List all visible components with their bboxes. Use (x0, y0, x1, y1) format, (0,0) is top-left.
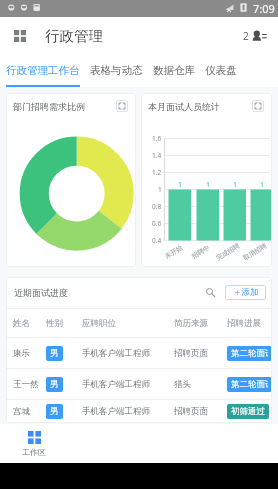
staticText: 男 (50, 348, 59, 359)
button[interactable]: 仪表盘 (200, 54, 242, 87)
staticText: 初筛通过 (231, 406, 265, 417)
staticText: 2 (243, 29, 249, 43)
staticText: 数据仓库 (153, 64, 195, 77)
staticText: 1 (206, 180, 211, 190)
staticText: 第二轮面试 (231, 379, 268, 390)
button[interactable]: Members (240, 26, 270, 46)
staticText: 男 (50, 406, 59, 417)
button[interactable]: 表格与动态 (85, 54, 148, 87)
staticText: 0.4 (152, 236, 162, 245)
button[interactable]: 王一然 (6, 369, 272, 399)
staticText: 招聘中 (190, 243, 212, 261)
staticText: 近期面试进度 (14, 287, 68, 298)
button[interactable]: Search (201, 285, 220, 300)
button[interactable]: Fullscreen (116, 100, 128, 112)
staticText: 本月面试人员统计 (148, 101, 220, 112)
button[interactable]: Menu (9, 24, 31, 48)
staticText: 猎头 (174, 379, 191, 390)
staticText: 行政管理工作台 (6, 64, 80, 77)
staticText: 1.6 (152, 134, 162, 143)
staticText: 未开始 (163, 243, 185, 261)
staticText: 0.8 (152, 202, 162, 211)
button[interactable]: 宫城 (6, 400, 272, 423)
staticText: 部门招聘需求比例 (13, 101, 85, 112)
staticText: 宫城 (13, 406, 30, 417)
button[interactable]: ＋添加 (225, 285, 266, 300)
button[interactable]: 数据仓库 (148, 54, 200, 87)
staticText: 1 (233, 180, 238, 190)
staticText: 王一然 (13, 379, 39, 390)
staticText: 取消招聘 (242, 242, 268, 262)
staticText: 7:09 (253, 1, 275, 16)
button[interactable]: Fullscreen (252, 100, 264, 112)
staticText: 应聘职位 (82, 318, 116, 329)
staticText: 招聘进展 (227, 318, 261, 329)
staticText: 手机客户端工程师 (82, 406, 150, 417)
staticText: 1 (178, 180, 183, 190)
button[interactable]: 工作区 (0, 424, 68, 463)
staticText: 手机客户端工程师 (82, 348, 150, 359)
staticText: 手机客户端工程师 (82, 379, 150, 390)
staticText: 仪表盘 (205, 64, 237, 77)
staticText: ＋添加 (233, 287, 259, 298)
button[interactable]: 行政管理工作台 (0, 54, 85, 87)
staticText: 招聘页面 (174, 406, 208, 417)
staticText: 招聘页面 (174, 348, 208, 359)
staticText: 完成招聘 (215, 242, 241, 262)
staticText: 工作区 (22, 447, 46, 457)
staticText: 男 (50, 379, 59, 390)
staticText: 简历来源 (174, 318, 208, 329)
staticText: 姓名 (13, 318, 30, 329)
staticText: 表格与动态 (90, 64, 143, 77)
staticText: 0.6 (152, 219, 162, 228)
staticText: 1.2 (152, 168, 162, 177)
staticText: 1.4 (152, 151, 162, 160)
staticText: 康乐 (13, 348, 30, 359)
staticText: 行政管理 (45, 27, 103, 45)
button[interactable]: 康乐 (6, 338, 272, 368)
staticText: 1 (158, 185, 162, 194)
staticText: 1 (260, 180, 265, 190)
staticText: 第二轮面试 (231, 348, 268, 359)
staticText: 性别 (46, 318, 63, 329)
